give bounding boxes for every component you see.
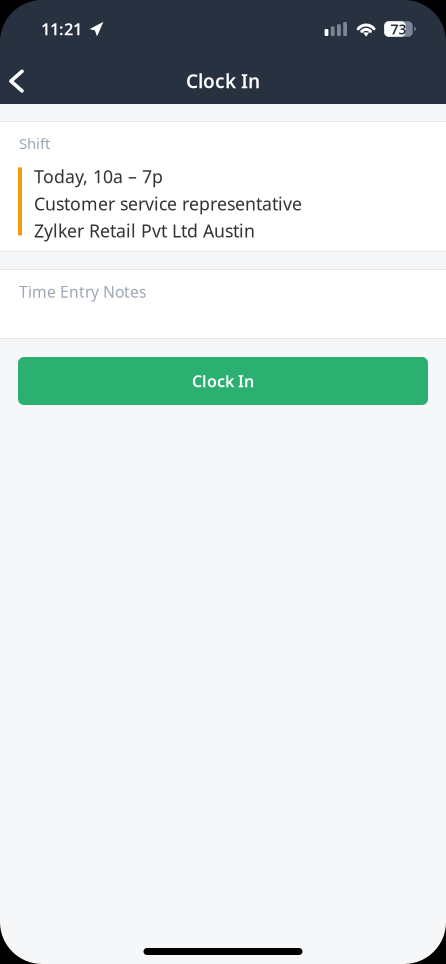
staticText: Today, 10a – 7p (34, 164, 163, 188)
button[interactable]: Back (0, 58, 38, 103)
staticText: Time Entry Notes (19, 281, 146, 302)
button[interactable]: Time Entry Notes (0, 270, 446, 338)
staticText: 11:21 (41, 18, 82, 40)
staticText: 73 (390, 19, 406, 39)
button[interactable]: Clock In (0, 357, 446, 405)
staticText: Customer service representative (34, 191, 302, 216)
staticText: Zylker Retail Pvt Ltd Austin (34, 219, 255, 243)
staticText: Clock In (186, 68, 260, 94)
staticText: Shift (19, 133, 50, 153)
staticText: Clock In (192, 370, 254, 392)
